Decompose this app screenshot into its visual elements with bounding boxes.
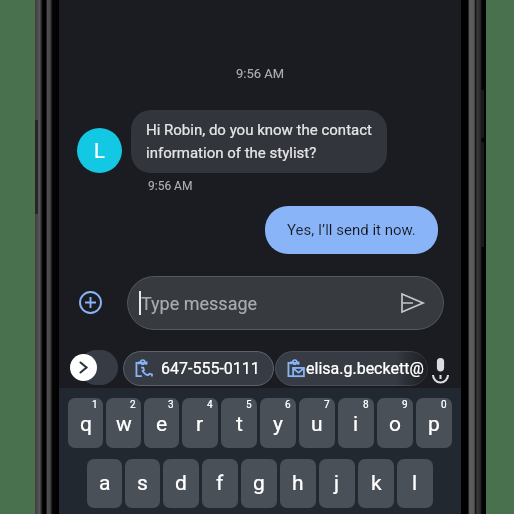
staticText: f: [216, 471, 224, 496]
button[interactable]: Voice input: [424, 352, 456, 384]
button[interactable]: f: [202, 459, 238, 508]
button[interactable]: 6: [260, 398, 296, 448]
staticText: 1: [92, 399, 98, 411]
staticText: Hi Robin, do you know the contact inform…: [146, 121, 372, 162]
staticText: 5: [246, 399, 252, 411]
staticText: s: [137, 471, 148, 496]
button[interactable]: 0: [416, 398, 452, 448]
button[interactable]: k: [358, 459, 394, 508]
button[interactable]: Show more suggestions: [70, 354, 97, 381]
button[interactable]: a: [87, 459, 122, 508]
staticText: Type message: [141, 293, 258, 314]
button[interactable]: j: [319, 459, 355, 508]
staticText: k: [371, 471, 382, 496]
button[interactable]: 8: [338, 398, 374, 448]
button[interactable]: g: [241, 459, 277, 508]
staticText: h: [292, 471, 304, 496]
staticText: t: [236, 412, 243, 437]
button[interactable]: Yes, I’ll send it now.: [265, 206, 438, 254]
staticText: L: [94, 139, 105, 162]
staticText: q: [80, 412, 92, 437]
button[interactable]: d: [163, 459, 199, 508]
staticText: r: [196, 412, 204, 437]
staticText: 9:56 AM: [59, 66, 461, 81]
button[interactable]: 1: [68, 398, 103, 448]
staticText: 647-555-0111: [161, 359, 260, 378]
staticText: 6: [285, 399, 291, 411]
button[interactable]: 647-555-0111: [123, 351, 274, 386]
staticText: j: [334, 471, 340, 496]
button[interactable]: s: [125, 459, 160, 508]
staticText: elisa.g.beckett@: [306, 359, 428, 378]
staticText: 2: [130, 399, 136, 411]
staticText: 3: [168, 399, 174, 411]
staticText: l: [412, 471, 418, 496]
button[interactable]: 9: [377, 398, 413, 448]
button[interactable]: Type message: [127, 276, 444, 330]
staticText: i: [353, 412, 359, 437]
button[interactable]: Add attachment: [70, 282, 110, 322]
staticText: 0: [441, 399, 447, 411]
staticText: a: [99, 471, 111, 496]
button[interactable]: elisa.g.beckett@: [275, 351, 428, 386]
staticText: o: [389, 412, 401, 437]
button[interactable]: 7: [299, 398, 335, 448]
button[interactable]: h: [280, 459, 316, 508]
button[interactable]: 5: [221, 398, 257, 448]
staticText: Yes, I’ll send it now.: [287, 221, 416, 239]
button[interactable]: Contact avatar L: [77, 128, 122, 173]
staticText: w: [116, 412, 132, 437]
button[interactable]: 2: [106, 398, 141, 448]
staticText: 9:56 AM: [148, 179, 193, 193]
staticText: e: [156, 412, 168, 437]
staticText: 7: [324, 399, 330, 411]
button[interactable]: l: [397, 459, 433, 508]
staticText: u: [311, 412, 323, 437]
staticText: 4: [207, 399, 213, 411]
button[interactable]: Hi Robin, do you know the contact inform…: [131, 110, 387, 173]
staticText: y: [273, 412, 283, 437]
staticText: 8: [363, 399, 369, 411]
staticText: p: [428, 412, 440, 437]
staticText: g: [253, 471, 265, 496]
other: Send: [401, 293, 424, 313]
button[interactable]: 3: [144, 398, 179, 448]
staticText: d: [175, 471, 187, 496]
staticText: 9: [402, 399, 408, 411]
button[interactable]: 4: [182, 398, 218, 448]
